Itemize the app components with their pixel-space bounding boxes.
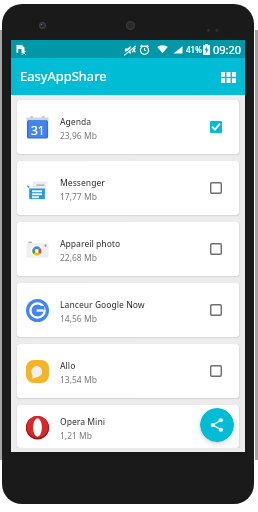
staticText: 17,77 Mb	[60, 191, 97, 203]
button[interactable]: Select app	[205, 360, 227, 382]
staticText: 31	[31, 122, 45, 138]
button[interactable]: Lanceur Google Now	[17, 283, 239, 337]
staticText: Messenger	[60, 177, 105, 189]
staticText: 13,54 Mb	[60, 374, 97, 386]
staticText: Agenda	[60, 116, 92, 128]
staticText: Opera Mini	[60, 416, 106, 428]
button[interactable]: Select app	[205, 177, 227, 199]
staticText: 1,21 Mb	[60, 430, 93, 442]
staticText: 14,56 Mb	[60, 313, 97, 325]
button[interactable]: Appareil photo	[17, 222, 239, 276]
staticText: Allo	[60, 360, 76, 372]
button[interactable]: Select app	[205, 116, 227, 138]
staticText: EasyAppShare	[20, 67, 107, 85]
button[interactable]: Select app	[205, 299, 227, 321]
button[interactable]: Share	[200, 408, 234, 442]
button[interactable]: Allo	[17, 344, 239, 398]
staticText: 22,68 Mb	[60, 252, 97, 264]
staticText: 09:20	[213, 42, 242, 57]
staticText: 23,96 Mb	[60, 130, 97, 142]
button[interactable]: Grid view	[214, 63, 242, 91]
staticText: 41%	[186, 44, 202, 55]
staticText: Appareil photo	[60, 238, 121, 250]
staticText: Lanceur Google Now	[60, 299, 145, 311]
button[interactable]: Messenger	[17, 161, 239, 215]
button[interactable]: Select app	[205, 238, 227, 260]
button[interactable]: 31	[17, 100, 239, 154]
button[interactable]: Opera Mini	[17, 405, 239, 448]
button[interactable]: Select app	[205, 416, 227, 438]
